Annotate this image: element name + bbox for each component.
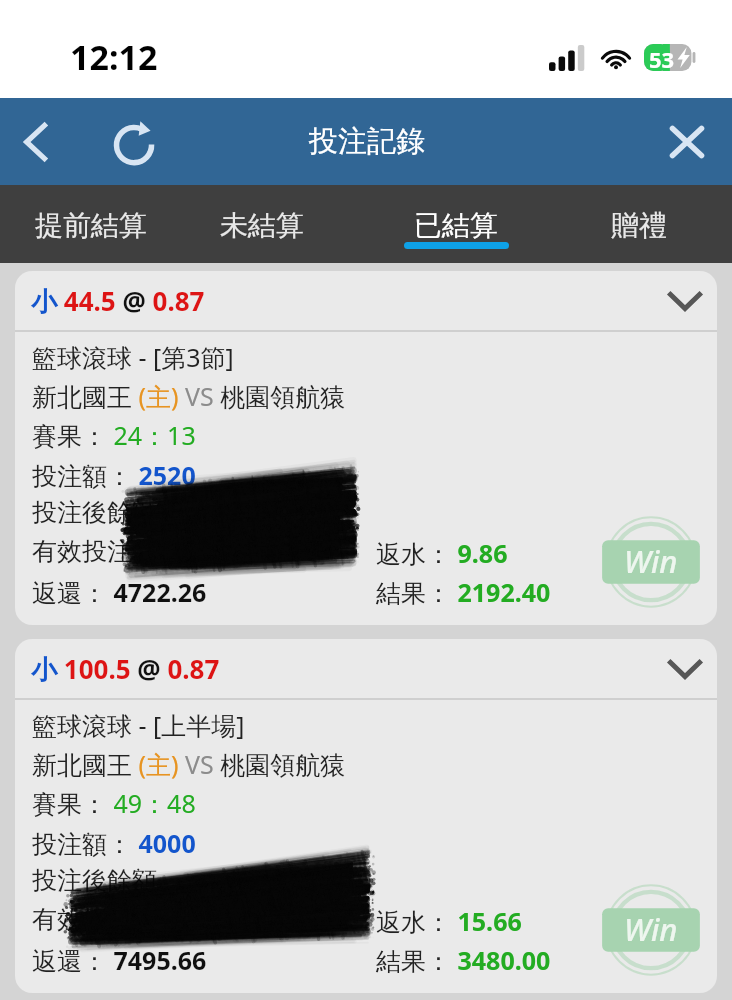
staticText: 返還： 7495.66 <box>32 943 207 977</box>
staticText: 結果： 3480.00 <box>376 943 551 977</box>
staticText: Win <box>624 908 678 950</box>
staticText: 12:12 <box>70 34 158 80</box>
staticText: 小 44.5 @ 0.87 <box>31 283 205 319</box>
staticText: 有效投注： <box>32 536 157 567</box>
button[interactable]: 未結算 <box>208 185 316 263</box>
staticText: 籃球滾球 - [上半場] <box>32 708 245 742</box>
staticText: 結果： 2192.40 <box>376 575 551 609</box>
staticText: 贈禮 <box>611 208 667 243</box>
staticText: 53 <box>649 44 675 71</box>
button[interactable]: Refresh <box>104 111 166 173</box>
staticText: 投注後餘額 <box>32 865 157 896</box>
button[interactable]: 提前結算 <box>27 185 155 263</box>
button[interactable]: Expand <box>657 645 713 693</box>
button[interactable]: 贈禮 <box>596 185 682 263</box>
staticText: 提前結算 <box>35 208 147 243</box>
staticText: 返還： 4722.26 <box>32 575 207 609</box>
staticText: 返水： 9.86 <box>376 536 508 570</box>
button[interactable]: 小 44.5 @ 0.87 <box>15 271 717 330</box>
staticText: 已結算 <box>414 208 498 243</box>
staticText: 返水： 15.66 <box>376 904 522 938</box>
staticText: 投注額： 4000 <box>32 826 196 860</box>
staticText: 有效投注： <box>32 904 157 935</box>
staticText: 賽果： 49：48 <box>32 786 196 820</box>
staticText: 小 100.5 @ 0.87 <box>31 651 220 687</box>
staticText: 籃球滾球 - [第3節] <box>32 340 234 374</box>
button[interactable]: Expand <box>657 277 713 325</box>
button[interactable]: Close <box>656 111 718 173</box>
button[interactable]: Back <box>5 110 68 173</box>
staticText: 新北國王 (主) VS 桃園領航猿 <box>32 379 346 413</box>
staticText: 投注額： 2520 <box>32 458 196 492</box>
staticText: 投注記錄 <box>309 123 425 160</box>
staticText: 投注後餘額 <box>32 497 157 528</box>
button[interactable]: 小 100.5 @ 0.87 <box>15 639 717 698</box>
staticText: 賽果： 24：13 <box>32 418 196 452</box>
button[interactable]: 已結算 <box>402 185 510 263</box>
staticText: 未結算 <box>220 208 304 243</box>
staticText: 新北國王 (主) VS 桃園領航猿 <box>32 747 346 781</box>
staticText: Win <box>624 540 678 582</box>
